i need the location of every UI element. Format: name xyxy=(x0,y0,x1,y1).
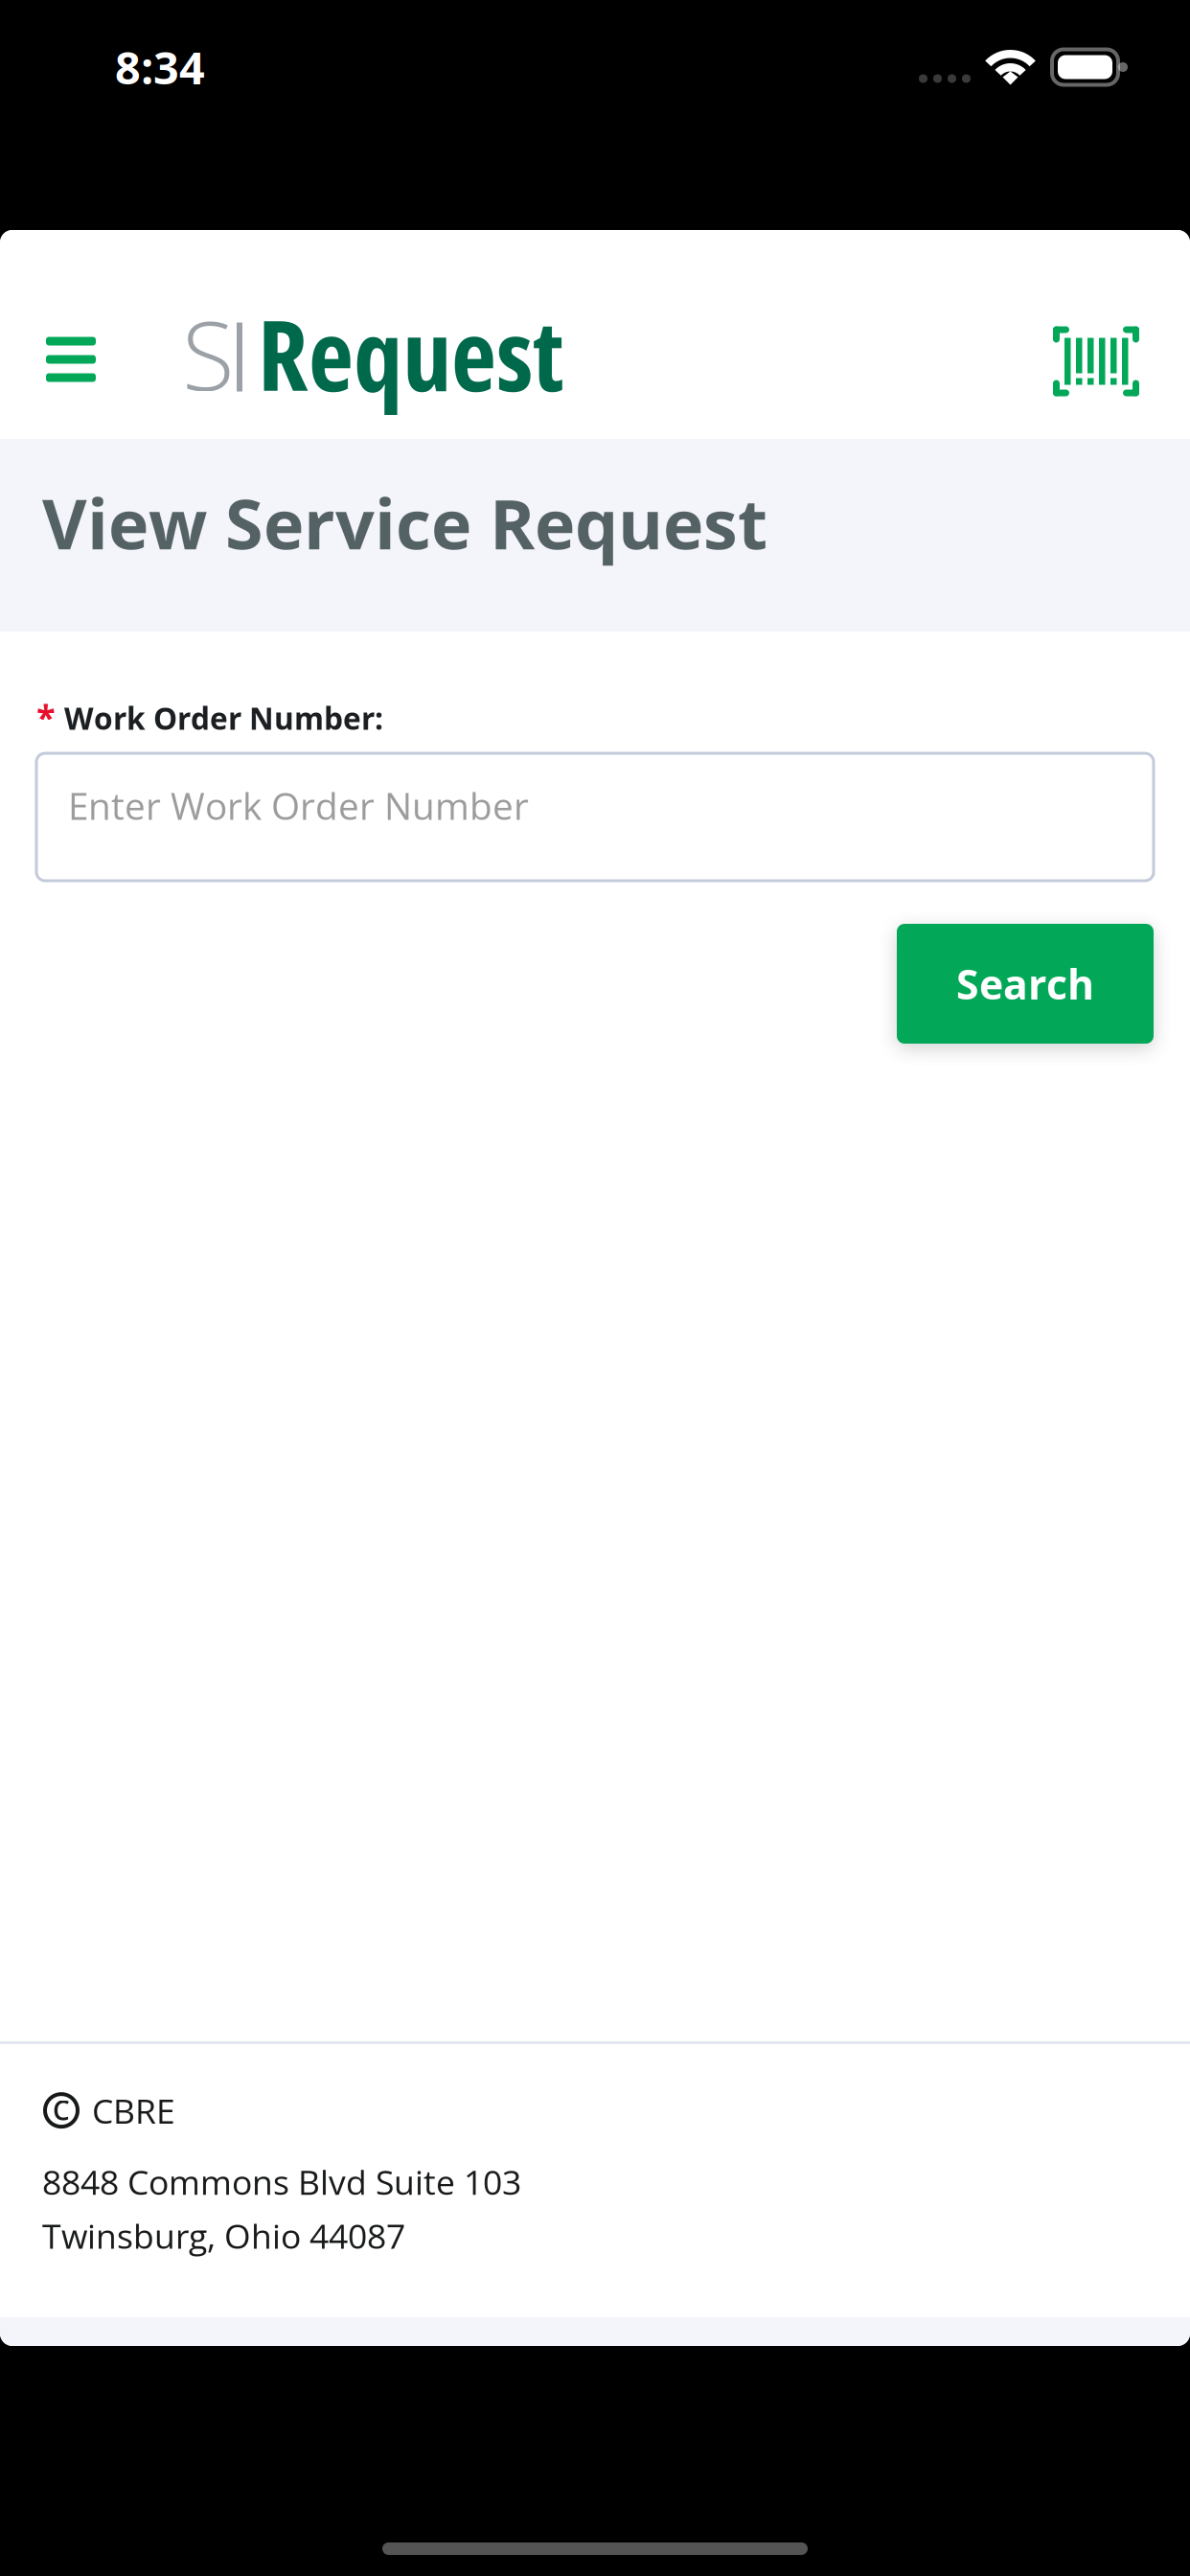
staticText: * xyxy=(36,693,56,740)
staticText: Enter Work Order Number xyxy=(68,780,529,831)
button[interactable]: Menu xyxy=(0,230,134,438)
staticText: View Service Request xyxy=(42,476,767,570)
staticText: S xyxy=(182,288,235,419)
staticText: Twinsburg, Ohio 44087 xyxy=(42,2212,405,2259)
staticText: CBRE xyxy=(92,2087,175,2134)
staticText: C xyxy=(53,2092,70,2128)
button[interactable]: Scan barcode xyxy=(1028,230,1190,439)
staticText: Request xyxy=(258,286,564,420)
button[interactable]: Search xyxy=(897,924,1154,1044)
staticText: Search xyxy=(956,956,1094,1012)
staticText: 8848 Commons Blvd Suite 103 xyxy=(42,2158,521,2205)
staticText: Work Order Number: xyxy=(64,697,383,739)
staticText: 8:34 xyxy=(115,37,205,98)
